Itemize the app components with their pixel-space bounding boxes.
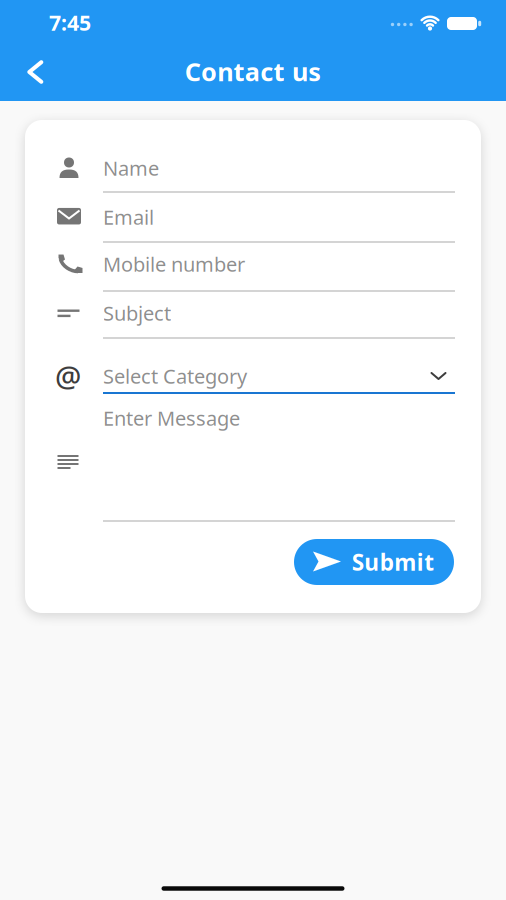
staticText: Name: [103, 155, 159, 181]
staticText: Select Category: [103, 363, 247, 389]
textField[interactable]: Email: [103, 204, 455, 230]
staticText: Enter Message: [103, 405, 240, 431]
staticText: 7:45: [49, 8, 91, 37]
staticText: Subject: [103, 300, 171, 326]
textField[interactable]: Mobile number: [103, 251, 455, 277]
button[interactable]: Submit: [294, 539, 454, 585]
staticText: Contact us: [185, 55, 321, 88]
staticText: @: [55, 356, 81, 395]
textField[interactable]: Subject: [103, 300, 455, 326]
button[interactable]: Select Category: [103, 359, 455, 393]
staticText: Email: [103, 204, 154, 230]
staticText: Mobile number: [103, 251, 245, 277]
button[interactable]: Back: [12, 50, 56, 94]
staticText: Submit: [352, 547, 434, 577]
textField[interactable]: Enter Message: [103, 405, 455, 431]
textField[interactable]: Name: [103, 155, 455, 181]
